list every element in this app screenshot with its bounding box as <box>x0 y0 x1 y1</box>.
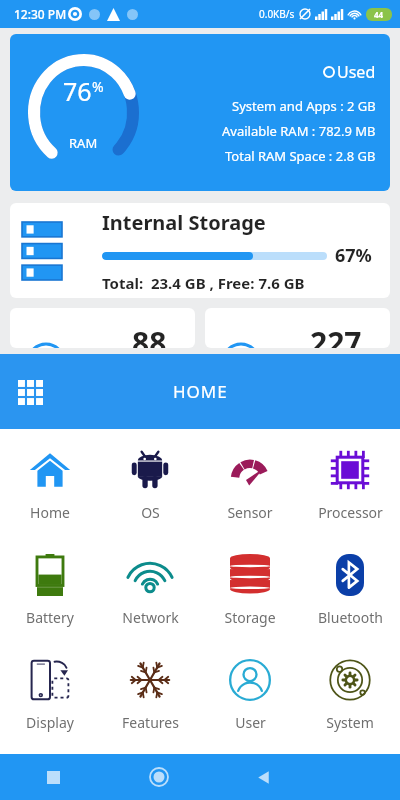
button[interactable]: 88 <box>10 308 195 348</box>
button[interactable]: Home <box>0 437 100 542</box>
staticText: Battery <box>26 608 74 627</box>
button[interactable]: Internal Storage <box>10 203 390 298</box>
button[interactable]: System <box>300 647 400 752</box>
staticText: Display <box>26 713 74 732</box>
button[interactable]: Home <box>106 754 211 800</box>
staticText: OS <box>141 503 160 522</box>
button[interactable]: Recent apps <box>0 754 106 800</box>
button[interactable]: Apps menu <box>14 376 46 408</box>
button[interactable]: Processor <box>300 437 400 542</box>
staticText: 88 <box>132 322 167 348</box>
staticText: Home <box>30 503 70 522</box>
staticText: Total: 23.4 GB , Free: 7.6 GB <box>102 273 305 293</box>
button[interactable]: 76 <box>10 34 390 191</box>
button[interactable]: User <box>200 647 300 752</box>
staticText: Features <box>122 713 179 732</box>
staticText: 227 <box>310 322 362 348</box>
staticText: Total RAM Space : 2.8 GB <box>225 147 376 165</box>
staticText: Available RAM : 782.9 MB <box>222 122 376 140</box>
button[interactable]: Battery <box>0 542 100 647</box>
button[interactable]: Features <box>100 647 200 752</box>
staticText: 0.0KB/s <box>259 7 295 21</box>
staticText: System and Apps : 2 GB <box>232 97 376 115</box>
button[interactable]: Back <box>211 754 316 800</box>
button[interactable]: 227 <box>205 308 390 348</box>
staticText: 67% <box>335 243 372 268</box>
staticText: HOME <box>173 380 228 403</box>
button[interactable]: OS <box>100 437 200 542</box>
staticText: % <box>92 77 104 96</box>
button[interactable]: Sensor <box>200 437 300 542</box>
staticText: Sensor <box>227 503 273 522</box>
staticText: 12:30 PM <box>14 6 67 22</box>
staticText: Internal Storage <box>102 209 266 236</box>
staticText: Bluetooth <box>318 608 383 627</box>
button[interactable]: Display <box>0 647 100 752</box>
staticText: User <box>235 713 266 732</box>
staticText: Processor <box>318 503 383 522</box>
staticText: RAM <box>69 134 98 152</box>
staticText: 76 <box>63 74 92 108</box>
button[interactable]: Bluetooth <box>300 542 400 647</box>
staticText: Used <box>337 61 376 83</box>
button[interactable]: Storage <box>200 542 300 647</box>
staticText: Storage <box>224 608 276 627</box>
staticText: Network <box>122 608 179 627</box>
button[interactable]: Network <box>100 542 200 647</box>
button[interactable]: Apps menu <box>0 354 400 429</box>
staticText: System <box>326 713 374 732</box>
staticText: 44 <box>374 9 384 20</box>
